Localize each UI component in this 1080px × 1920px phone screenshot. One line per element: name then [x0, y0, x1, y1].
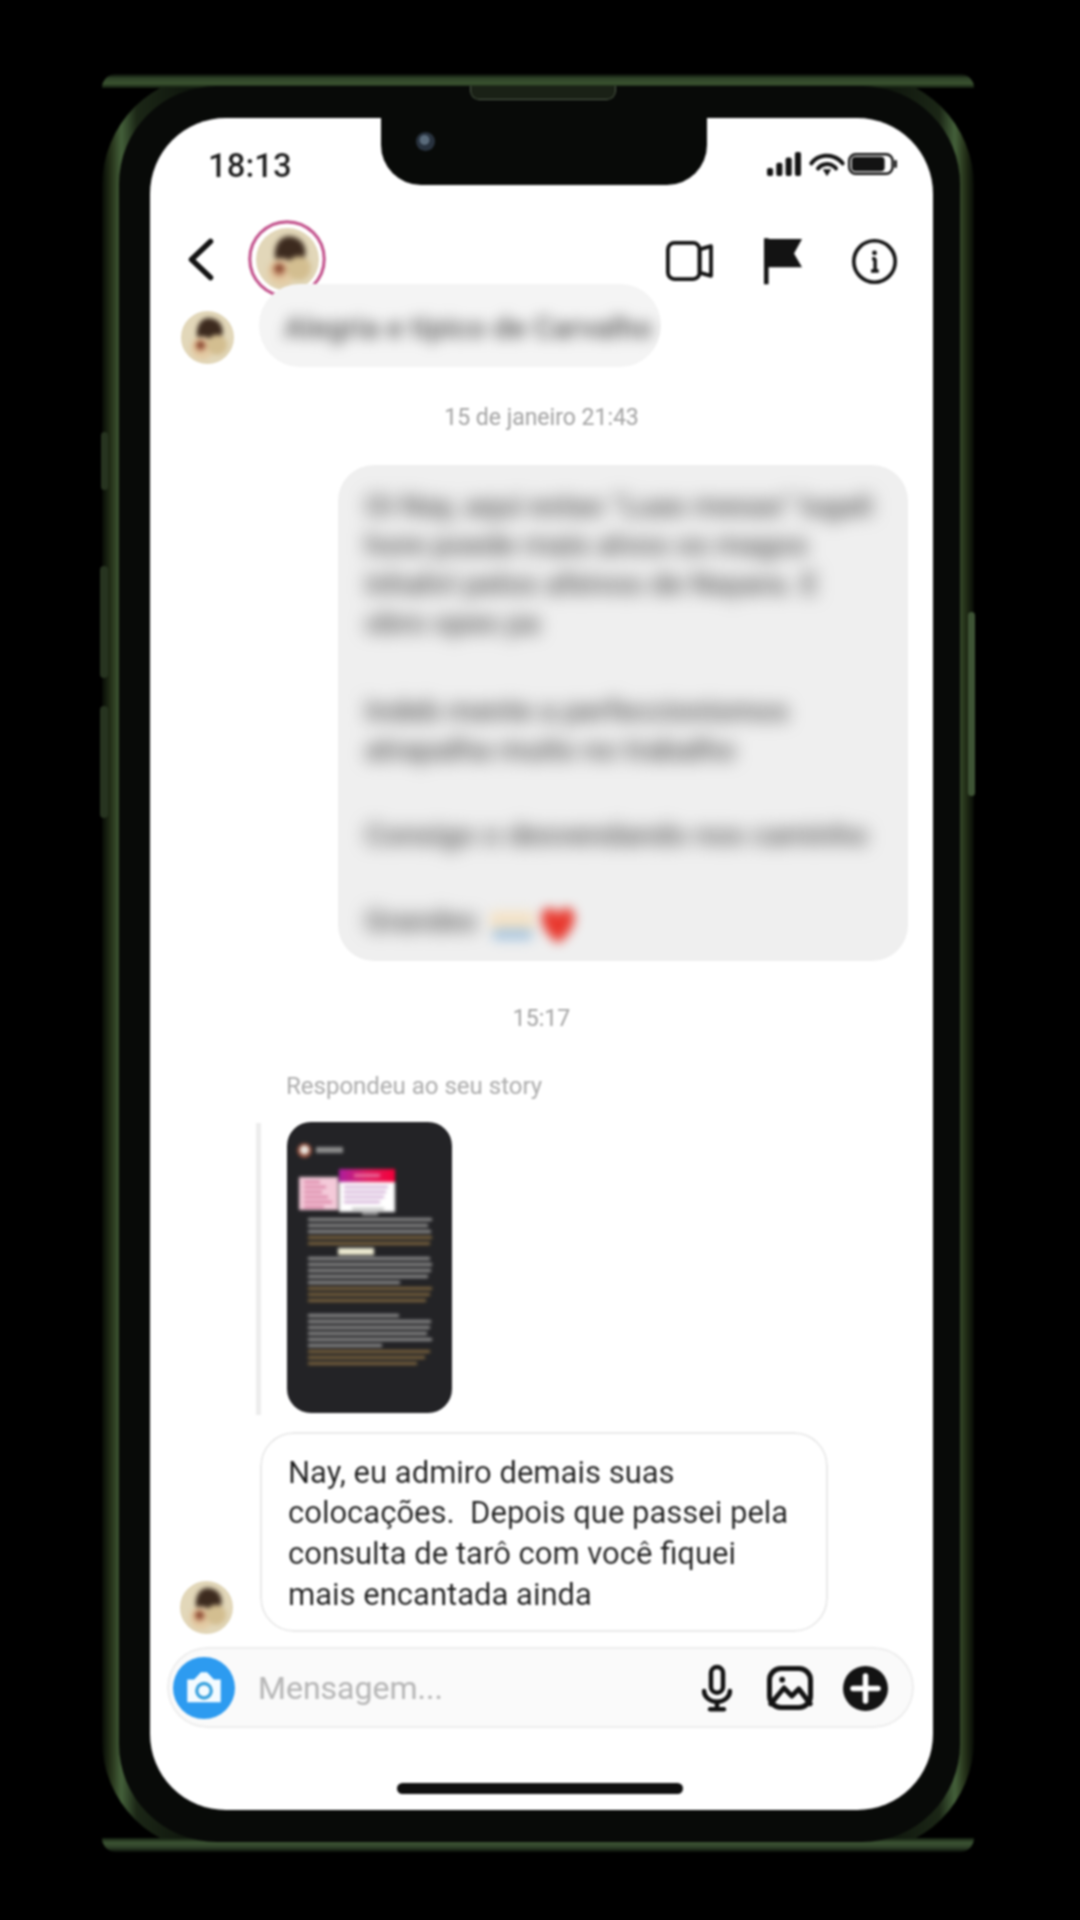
- staticText: Mensagem...: [258, 1669, 443, 1707]
- button[interactable]: Add attachment: [843, 1666, 888, 1711]
- button[interactable]: Gallery: [760, 1658, 820, 1718]
- staticText: Consigo o desvendando nos caminho: [365, 817, 868, 852]
- staticText: 15:17: [150, 1005, 933, 1032]
- staticText: 18:13: [208, 146, 292, 185]
- button[interactable]: Voice message: [687, 1658, 747, 1718]
- button[interactable]: [167, 1647, 914, 1728]
- staticText: inhahri pelos afeivos de Nayara. E: [365, 566, 818, 601]
- staticText: hore poede rnais alvos os magos: [365, 527, 808, 562]
- staticText: atrapalha muito no trabalho: [365, 732, 736, 767]
- button[interactable]: Alegria e típico de Carvalho: [259, 284, 661, 367]
- staticText: obro opes pa: [365, 605, 540, 640]
- button[interactable]: Nay, eu admiro demais suas colocações. D…: [260, 1432, 828, 1632]
- button[interactable]: Info: [843, 230, 905, 292]
- button[interactable]: Report: [752, 230, 814, 292]
- button[interactable]: Profile photo: [248, 220, 326, 298]
- staticText: 15 de janeiro 21:43: [150, 404, 933, 431]
- button[interactable]: Oi Nay, aqui estao "Luas mesas" lugali: [338, 465, 908, 961]
- staticText: Oi Nay, aqui estao "Luas mesas" lugali: [365, 488, 874, 523]
- button[interactable]: Camera: [173, 1657, 235, 1719]
- button[interactable]: Story reply preview: [287, 1122, 452, 1413]
- staticText: Grandes: [365, 903, 478, 938]
- staticText: Alegria e típico de Carvalho: [284, 310, 653, 345]
- staticText: Respondeu ao seu story: [286, 1072, 543, 1100]
- button[interactable]: Video call: [659, 230, 721, 292]
- staticText: Nay, eu admiro demais suas colocações. D…: [288, 1454, 789, 1613]
- staticText: Indeb mente a perfeccionismos: [365, 693, 789, 728]
- button[interactable]: Back: [170, 228, 232, 290]
